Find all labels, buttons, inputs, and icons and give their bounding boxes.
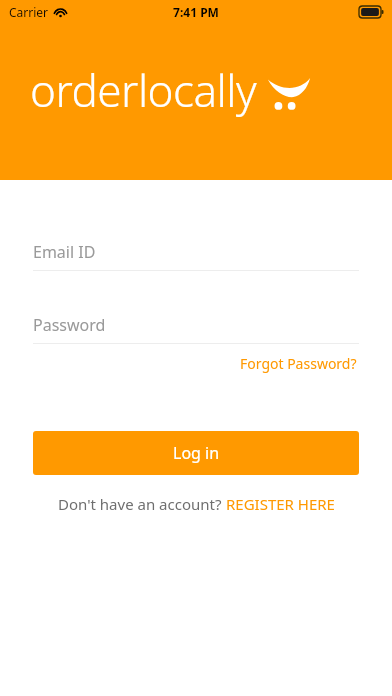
other: Wi-Fi <box>54 7 67 17</box>
staticText: Password <box>33 314 106 336</box>
staticText: Log in <box>173 442 220 464</box>
other: Battery <box>359 6 384 18</box>
button[interactable]: Log in <box>33 431 359 475</box>
other: Shopping cart <box>267 76 311 110</box>
staticText: 7:41 PM <box>173 4 219 20</box>
staticText: Carrier <box>9 4 49 20</box>
button[interactable]: Forgot Password? <box>238 351 359 376</box>
staticText: REGISTER HERE <box>226 494 335 514</box>
staticText: Forgot Password? <box>240 354 357 373</box>
staticText: Don't have an account? <box>58 494 226 514</box>
staticText: orderlocally <box>30 60 257 120</box>
button[interactable]: Email ID <box>33 238 359 271</box>
button[interactable]: REGISTER HERE <box>226 492 335 516</box>
button[interactable]: Password <box>33 311 359 344</box>
staticText: Email ID <box>33 241 96 263</box>
